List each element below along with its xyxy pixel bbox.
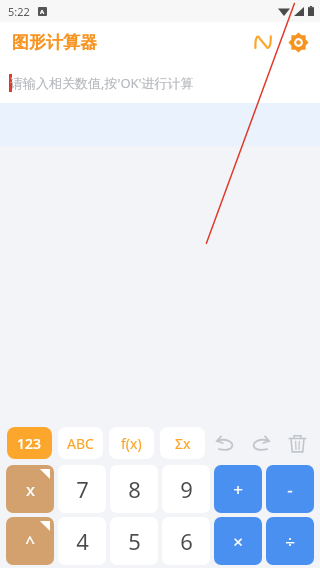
button[interactable]: Redo — [245, 427, 277, 459]
button[interactable]: Delete — [281, 427, 313, 459]
staticText: 图形计算器 — [12, 32, 97, 53]
button[interactable]: 4 — [58, 517, 106, 565]
staticText: 123 — [17, 434, 42, 453]
button[interactable]: Σx — [160, 427, 205, 459]
staticText: ABC — [67, 434, 94, 453]
staticText: - — [287, 478, 293, 501]
staticText: Σx — [175, 434, 191, 453]
button[interactable]: × — [214, 517, 262, 565]
button[interactable]: Undo — [209, 427, 241, 459]
button[interactable]: 7 — [58, 465, 106, 513]
button[interactable]: Graph — [250, 29, 276, 55]
button[interactable]: 8 — [110, 465, 158, 513]
button[interactable]: x — [6, 465, 54, 513]
staticText: f(x) — [121, 434, 142, 453]
button[interactable]: ABC — [58, 427, 103, 459]
button[interactable]: 6 — [162, 517, 210, 565]
staticText: 9 — [180, 474, 193, 504]
button[interactable]: - — [266, 465, 314, 513]
staticText: + — [233, 478, 243, 501]
staticText: 6 — [180, 526, 193, 556]
staticText: 4 — [76, 526, 89, 556]
staticText: 5 — [128, 526, 141, 556]
staticText: × — [233, 530, 243, 553]
button[interactable]: 9 — [162, 465, 210, 513]
staticText: 8 — [128, 474, 141, 504]
button[interactable]: Settings — [285, 29, 311, 55]
button[interactable]: 5 — [110, 517, 158, 565]
button[interactable]: f(x) — [109, 427, 154, 459]
button[interactable]: ^ — [6, 517, 54, 565]
button[interactable]: + — [214, 465, 262, 513]
staticText: 5:22 — [8, 4, 30, 19]
staticText: ^ — [25, 530, 35, 553]
staticText: ÷ — [285, 530, 295, 553]
staticText: A — [40, 8, 45, 16]
button[interactable]: 123 — [7, 427, 52, 459]
staticText: 7 — [76, 474, 89, 504]
button[interactable]: ÷ — [266, 517, 314, 565]
staticText: 请输入相关数值,按'OK'进行计算 — [10, 74, 194, 92]
staticText: x — [26, 478, 35, 501]
